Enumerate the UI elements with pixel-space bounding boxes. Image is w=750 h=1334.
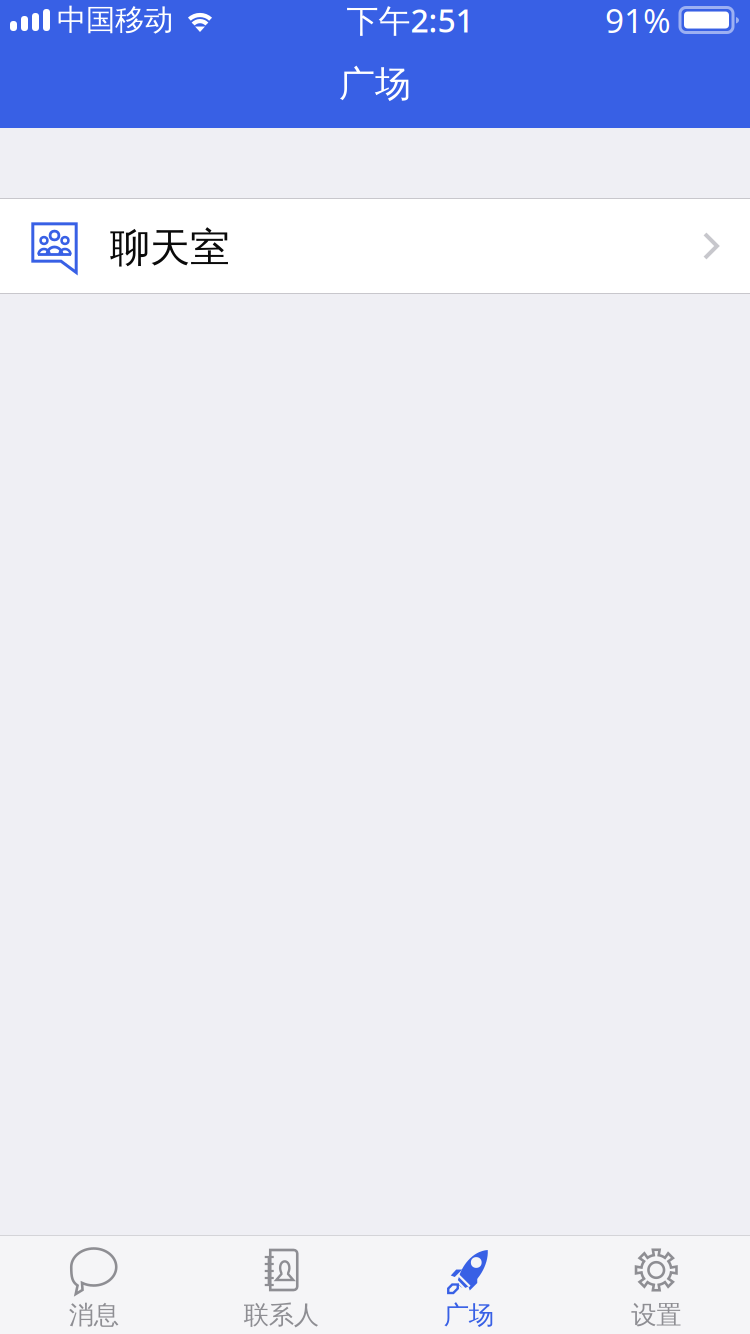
staticText: 联系人: [244, 1299, 319, 1330]
button[interactable]: 消息: [0, 1236, 187, 1334]
staticText: 消息: [69, 1299, 119, 1330]
staticText: 广场: [444, 1299, 494, 1330]
staticText: 聊天室: [110, 223, 230, 272]
button[interactable]: 聊天室: [0, 198, 750, 294]
staticText: 设置: [631, 1299, 681, 1330]
staticText: 广场: [339, 62, 411, 106]
button[interactable]: 广场: [375, 1236, 562, 1334]
staticText: 中国移动: [57, 2, 173, 38]
staticText: 下午2:51: [346, 0, 473, 41]
staticText: 91%: [605, 0, 671, 42]
button[interactable]: 设置: [562, 1236, 750, 1334]
button[interactable]: 联系人: [187, 1236, 375, 1334]
